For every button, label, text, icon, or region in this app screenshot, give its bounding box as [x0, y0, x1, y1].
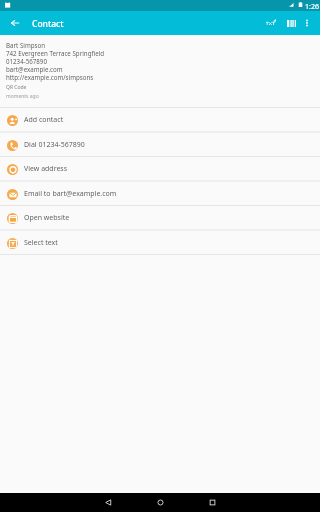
button[interactable]: Email	[0, 182, 320, 206]
staticText: Email to bart@example.com	[24, 189, 117, 199]
button[interactable]: Home	[134, 493, 186, 512]
button[interactable]: View address	[0, 157, 320, 181]
staticText: QR Code	[6, 84, 27, 91]
staticText: Add contact	[24, 115, 64, 125]
staticText: View address	[24, 164, 68, 174]
button[interactable]: Dial	[0, 133, 320, 157]
staticText: 01234-567890	[6, 57, 47, 65]
button[interactable]: Barcode	[281, 11, 302, 35]
button[interactable]: Navigate up	[0, 11, 25, 35]
staticText: moments ago	[6, 93, 39, 100]
staticText: 1:26	[305, 2, 319, 12]
staticText: Bart Simpson	[6, 41, 46, 49]
button[interactable]: More options	[297, 11, 317, 35]
button[interactable]: Back	[82, 493, 134, 512]
staticText: bart@example.com	[6, 65, 63, 73]
staticText: http://example.com/simpsons	[6, 73, 94, 81]
button[interactable]: Text mode	[260, 11, 281, 35]
button[interactable]: Select text	[0, 231, 320, 255]
button[interactable]: Open website	[0, 206, 320, 230]
staticText: 742 Evergreen Terrace Springfield	[6, 49, 105, 57]
staticText: Select text	[24, 238, 58, 248]
button[interactable]: Recent apps	[186, 493, 238, 512]
button[interactable]: Add contact	[0, 108, 320, 132]
staticText: Dial 01234-567890	[24, 140, 85, 150]
staticText: Open website	[24, 213, 70, 223]
staticText: Contact	[32, 18, 64, 30]
